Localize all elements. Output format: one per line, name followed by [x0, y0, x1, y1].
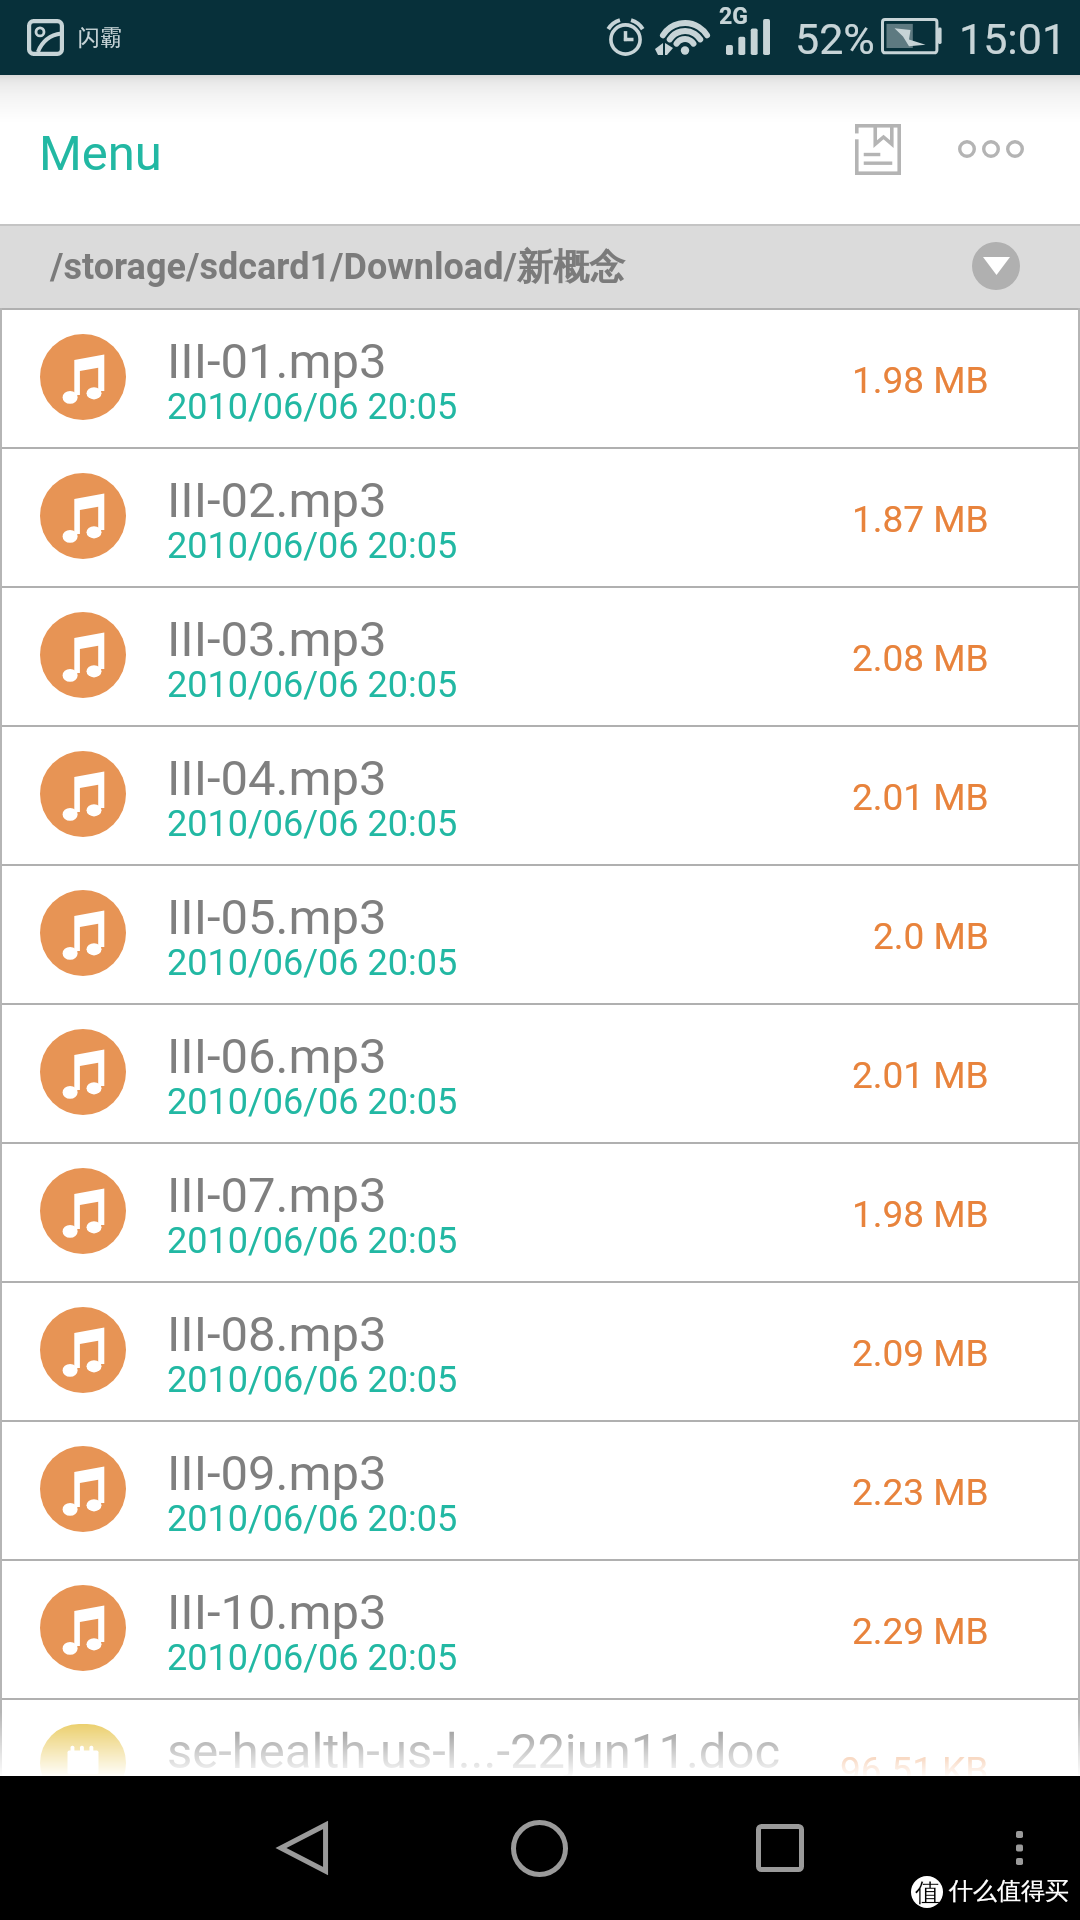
staticText: se-health-us-l...-22jun11.doc — [167, 1723, 781, 1776]
button[interactable]: /storage/sdcard1/Download/新概念 — [0, 224, 1080, 308]
staticText: 2010/06/06 20:05 — [167, 1220, 458, 1262]
button[interactable]: Bookmarks — [838, 109, 918, 189]
button[interactable]: III-08.mp3 — [0, 1281, 1080, 1420]
staticText: 值 — [915, 1877, 940, 1908]
button[interactable]: Menu — [970, 1798, 1070, 1898]
staticText: 1.98 MB — [852, 1193, 989, 1236]
button[interactable]: III-04.mp3 — [0, 725, 1080, 864]
staticText: III-06.mp3 — [167, 1028, 387, 1085]
staticText: 2.01 MB — [852, 1054, 989, 1097]
button[interactable]: III-02.mp3 — [0, 447, 1080, 586]
staticText: 1.98 MB — [852, 359, 989, 402]
staticText: 1.87 MB — [852, 498, 989, 541]
staticText: 2.29 MB — [852, 1610, 989, 1653]
staticText: 2.01 MB — [852, 776, 989, 819]
staticText: III-05.mp3 — [167, 889, 387, 946]
staticText: 2010/06/06 20:05 — [167, 803, 458, 845]
staticText: 52% — [795, 14, 875, 64]
button[interactable]: Menu — [39, 125, 162, 182]
button[interactable]: Back — [243, 1788, 363, 1908]
staticText: 2.0 MB — [873, 915, 989, 958]
staticText: III-09.mp3 — [167, 1445, 387, 1502]
staticText: III-08.mp3 — [167, 1306, 387, 1363]
staticText: 闪霸 — [78, 24, 122, 52]
staticText: 2010/06/06 20:05 — [167, 664, 458, 706]
staticText: 2010/06/06 20:05 — [167, 942, 458, 984]
staticText: 2010/06/06 20:05 — [167, 1359, 458, 1401]
staticText: III-07.mp3 — [167, 1167, 387, 1224]
button[interactable]: III-06.mp3 — [0, 1003, 1080, 1142]
staticText: 96.51 KB — [840, 1749, 989, 1776]
button[interactable]: Expand path — [972, 242, 1020, 290]
button[interactable]: III-10.mp3 — [0, 1559, 1080, 1698]
staticText: 2.23 MB — [852, 1471, 989, 1514]
staticText: III-03.mp3 — [167, 611, 387, 668]
button[interactable]: se-health-us-l...-22jun11.doc — [0, 1698, 1080, 1776]
staticText: III-01.mp3 — [167, 333, 387, 390]
staticText: 2010/06/06 20:05 — [167, 1637, 458, 1679]
button[interactable]: III-03.mp3 — [0, 586, 1080, 725]
staticText: 2010/06/06 20:05 — [167, 386, 458, 428]
staticText: III-02.mp3 — [167, 472, 387, 529]
staticText: 2G — [719, 3, 748, 30]
staticText: III-10.mp3 — [167, 1584, 387, 1641]
staticText: 15:01 — [959, 14, 1067, 64]
staticText: 2010/06/06 20:05 — [167, 1498, 458, 1540]
button[interactable]: III-09.mp3 — [0, 1420, 1080, 1559]
button[interactable]: III-05.mp3 — [0, 864, 1080, 1003]
staticText: 2.08 MB — [852, 637, 989, 680]
staticText: 2010/06/06 20:05 — [167, 525, 458, 567]
button[interactable]: III-01.mp3 — [0, 308, 1080, 447]
staticText: III-04.mp3 — [167, 750, 387, 807]
button[interactable]: III-07.mp3 — [0, 1142, 1080, 1281]
button[interactable]: Home — [479, 1788, 599, 1908]
staticText: 什么值得买 — [949, 1876, 1069, 1906]
staticText: /storage/sdcard1/Download/新概念 — [50, 244, 625, 289]
button[interactable]: Recents — [720, 1788, 840, 1908]
button[interactable]: More options — [950, 109, 1030, 189]
staticText: 2.09 MB — [852, 1332, 989, 1375]
staticText: 2010/06/06 20:05 — [167, 1081, 458, 1123]
